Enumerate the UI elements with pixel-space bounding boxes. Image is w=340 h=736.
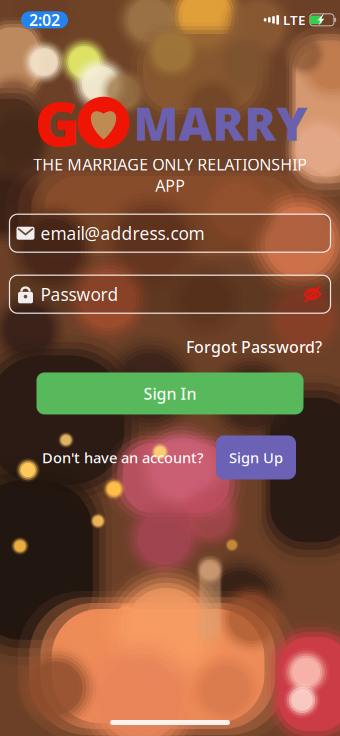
staticText: Sign In [143,383,196,404]
staticText: email@address.com [40,222,204,245]
staticText: G [34,82,79,163]
staticText: MARRY [133,92,307,154]
staticText: Forgot Password? [186,336,322,357]
staticText: Don't have an account? [42,448,204,467]
button[interactable]: Forgot Password? [184,333,324,360]
staticText: LTE [283,11,305,29]
staticText: THE MARRIAGE ONLY RELATIONSHIP APP [33,154,307,196]
button[interactable]: Sign Up [216,435,296,479]
button[interactable]: Sign In [36,372,303,414]
staticText: 2:02 [29,9,60,30]
staticText: Password [40,283,118,306]
staticText: Sign Up [229,448,283,467]
